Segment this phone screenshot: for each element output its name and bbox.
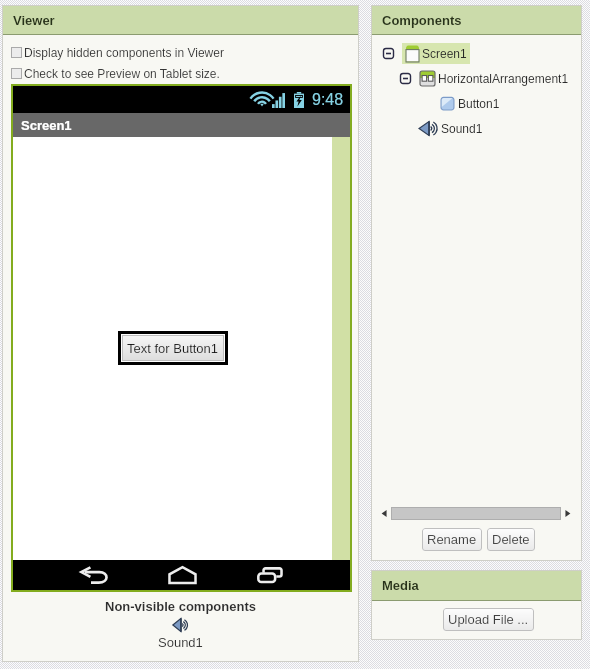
staticText: HorizontalArrangement1 — [438, 72, 569, 85]
staticText: Sound1 — [158, 635, 203, 650]
staticText: Media — [382, 578, 419, 593]
staticText: Non-visible components — [2, 599, 359, 614]
button[interactable]: Delete — [492, 532, 530, 547]
staticText: Screen1 — [21, 118, 72, 133]
button[interactable]: Rename — [427, 532, 477, 547]
staticText: Sound1 — [441, 122, 483, 135]
staticText: 9:48 — [312, 91, 344, 109]
staticText: Upload File ... — [448, 612, 529, 627]
staticText: Text for Button1 — [127, 341, 219, 356]
button[interactable]: Back — [74, 563, 114, 587]
staticText: Display hidden components in Viewer — [24, 46, 224, 59]
button[interactable]: Home — [162, 563, 202, 587]
button[interactable] — [378, 507, 391, 520]
button[interactable]: Recent apps — [250, 563, 290, 587]
button[interactable]: Screen1 — [371, 41, 582, 66]
button[interactable]: Display hidden components in Viewer — [11, 46, 368, 59]
staticText: Viewer — [13, 13, 55, 28]
button[interactable]: Text for Button1 — [121, 334, 225, 362]
staticText: Delete — [492, 532, 530, 547]
button[interactable]: Button1 — [371, 91, 582, 116]
button[interactable]: Check to see Preview on Tablet size. — [11, 67, 368, 80]
button[interactable]: Upload File ... — [448, 612, 529, 627]
button[interactable]: HorizontalArrangement1 — [371, 66, 582, 91]
staticText: Components — [382, 13, 462, 28]
staticText: Screen1 — [422, 47, 467, 60]
button[interactable] — [561, 507, 574, 520]
staticText: Check to see Preview on Tablet size. — [24, 67, 220, 80]
button[interactable]: Sound1 — [371, 116, 582, 141]
staticText: Button1 — [458, 97, 500, 110]
button[interactable]: Sound1 — [2, 618, 359, 650]
staticText: Rename — [427, 532, 477, 547]
button[interactable] — [391, 507, 561, 520]
